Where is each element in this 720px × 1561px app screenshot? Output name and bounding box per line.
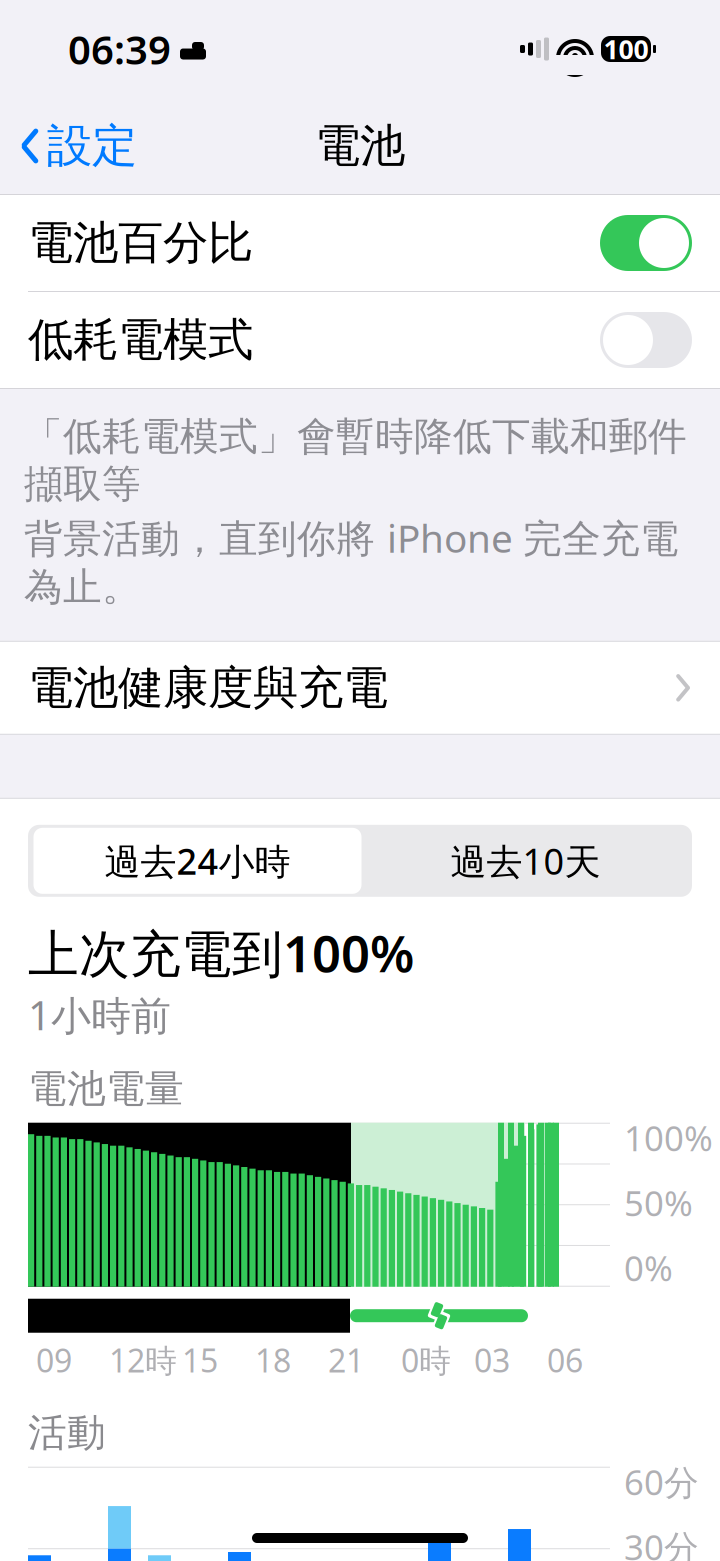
staticText: 低耗電模式 <box>28 312 253 368</box>
staticText: 03 <box>474 1339 510 1381</box>
button[interactable]: 過去24小時 <box>33 828 361 894</box>
staticText: 過去10天 <box>450 837 600 885</box>
staticText: 09 <box>36 1339 72 1381</box>
staticText: 電池 <box>315 118 405 174</box>
staticText: 背景活動，直到你將 iPhone 完全充電為止。 <box>24 512 679 611</box>
staticText: 0% <box>624 1245 673 1291</box>
staticText: 上次充電到100% <box>28 919 414 986</box>
staticText: 60分 <box>624 1459 699 1505</box>
button[interactable]: 過去10天 <box>361 828 689 894</box>
staticText: 1小時前 <box>28 988 171 1041</box>
staticText: 電池健康度與充電 <box>28 660 388 716</box>
staticText: 100% <box>624 1115 713 1161</box>
staticText: 設定 <box>47 118 137 174</box>
staticText: 「低耗電模式」會暫時降低下載和郵件擷取等 <box>24 413 687 508</box>
staticText: 活動 <box>28 1409 106 1457</box>
staticText: 100 <box>603 31 648 67</box>
button[interactable]: 低耗電模式 <box>0 292 720 388</box>
staticText: 18 <box>255 1339 291 1381</box>
staticText: 21 <box>328 1339 364 1381</box>
staticText: 12時 <box>109 1339 177 1381</box>
staticText: 電池電量 <box>28 1065 184 1113</box>
staticText: 15 <box>182 1339 218 1381</box>
button[interactable]: 電池百分比 <box>0 195 720 291</box>
button[interactable]: 電池健康度與充電 <box>0 642 720 734</box>
button[interactable]: 設定 <box>0 112 137 180</box>
staticText: 30分 <box>624 1524 699 1561</box>
staticText: 06:39 <box>68 22 171 75</box>
staticText: 50% <box>624 1180 693 1226</box>
staticText: 06 <box>547 1339 583 1381</box>
staticText: 電池百分比 <box>28 215 253 271</box>
staticText: 0時 <box>401 1339 451 1381</box>
staticText: 過去24小時 <box>104 837 290 885</box>
